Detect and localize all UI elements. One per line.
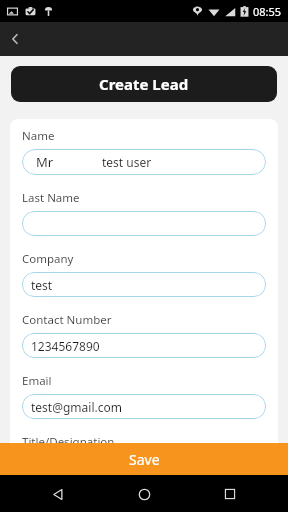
button[interactable] xyxy=(22,455,266,480)
staticText: Contact Number xyxy=(22,312,112,328)
staticText: Title/Designation xyxy=(22,434,115,450)
staticText: Email xyxy=(22,373,52,389)
button[interactable]: test@gmail.com xyxy=(22,394,266,419)
button[interactable]: Back xyxy=(0,24,30,54)
button[interactable]: Create Lead xyxy=(11,66,277,102)
staticText: test@gmail.com xyxy=(31,399,122,415)
staticText: Name xyxy=(22,128,55,144)
staticText: Create Lead xyxy=(99,74,189,94)
button[interactable]: Save xyxy=(0,443,288,475)
button[interactable]: Back xyxy=(44,480,72,508)
button[interactable]: 1234567890 xyxy=(22,333,266,358)
button[interactable] xyxy=(22,211,266,236)
staticText: Company xyxy=(22,251,74,267)
staticText: 1234567890 xyxy=(31,338,100,354)
button[interactable]: Recent apps xyxy=(216,480,244,508)
staticText: 08:55 xyxy=(253,4,282,19)
button[interactable]: Home xyxy=(130,480,158,508)
button[interactable]: test xyxy=(22,272,266,297)
staticText: test user xyxy=(102,154,152,170)
staticText: Mr xyxy=(36,153,54,171)
staticText: Last Name xyxy=(22,190,80,206)
staticText: Save xyxy=(129,450,160,469)
button[interactable]: Mr xyxy=(22,149,266,175)
staticText: test xyxy=(31,277,53,293)
